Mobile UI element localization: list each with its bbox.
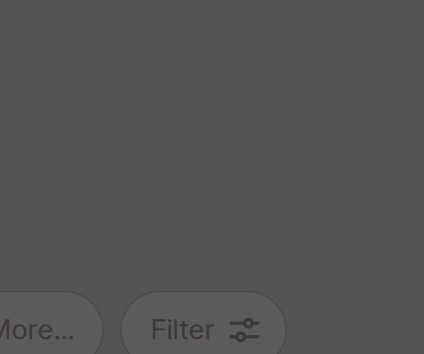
staticText: Filter <box>150 312 214 346</box>
button[interactable]: Filter <box>121 291 286 354</box>
button[interactable]: More... <box>0 291 103 354</box>
staticText: More... <box>0 312 74 346</box>
